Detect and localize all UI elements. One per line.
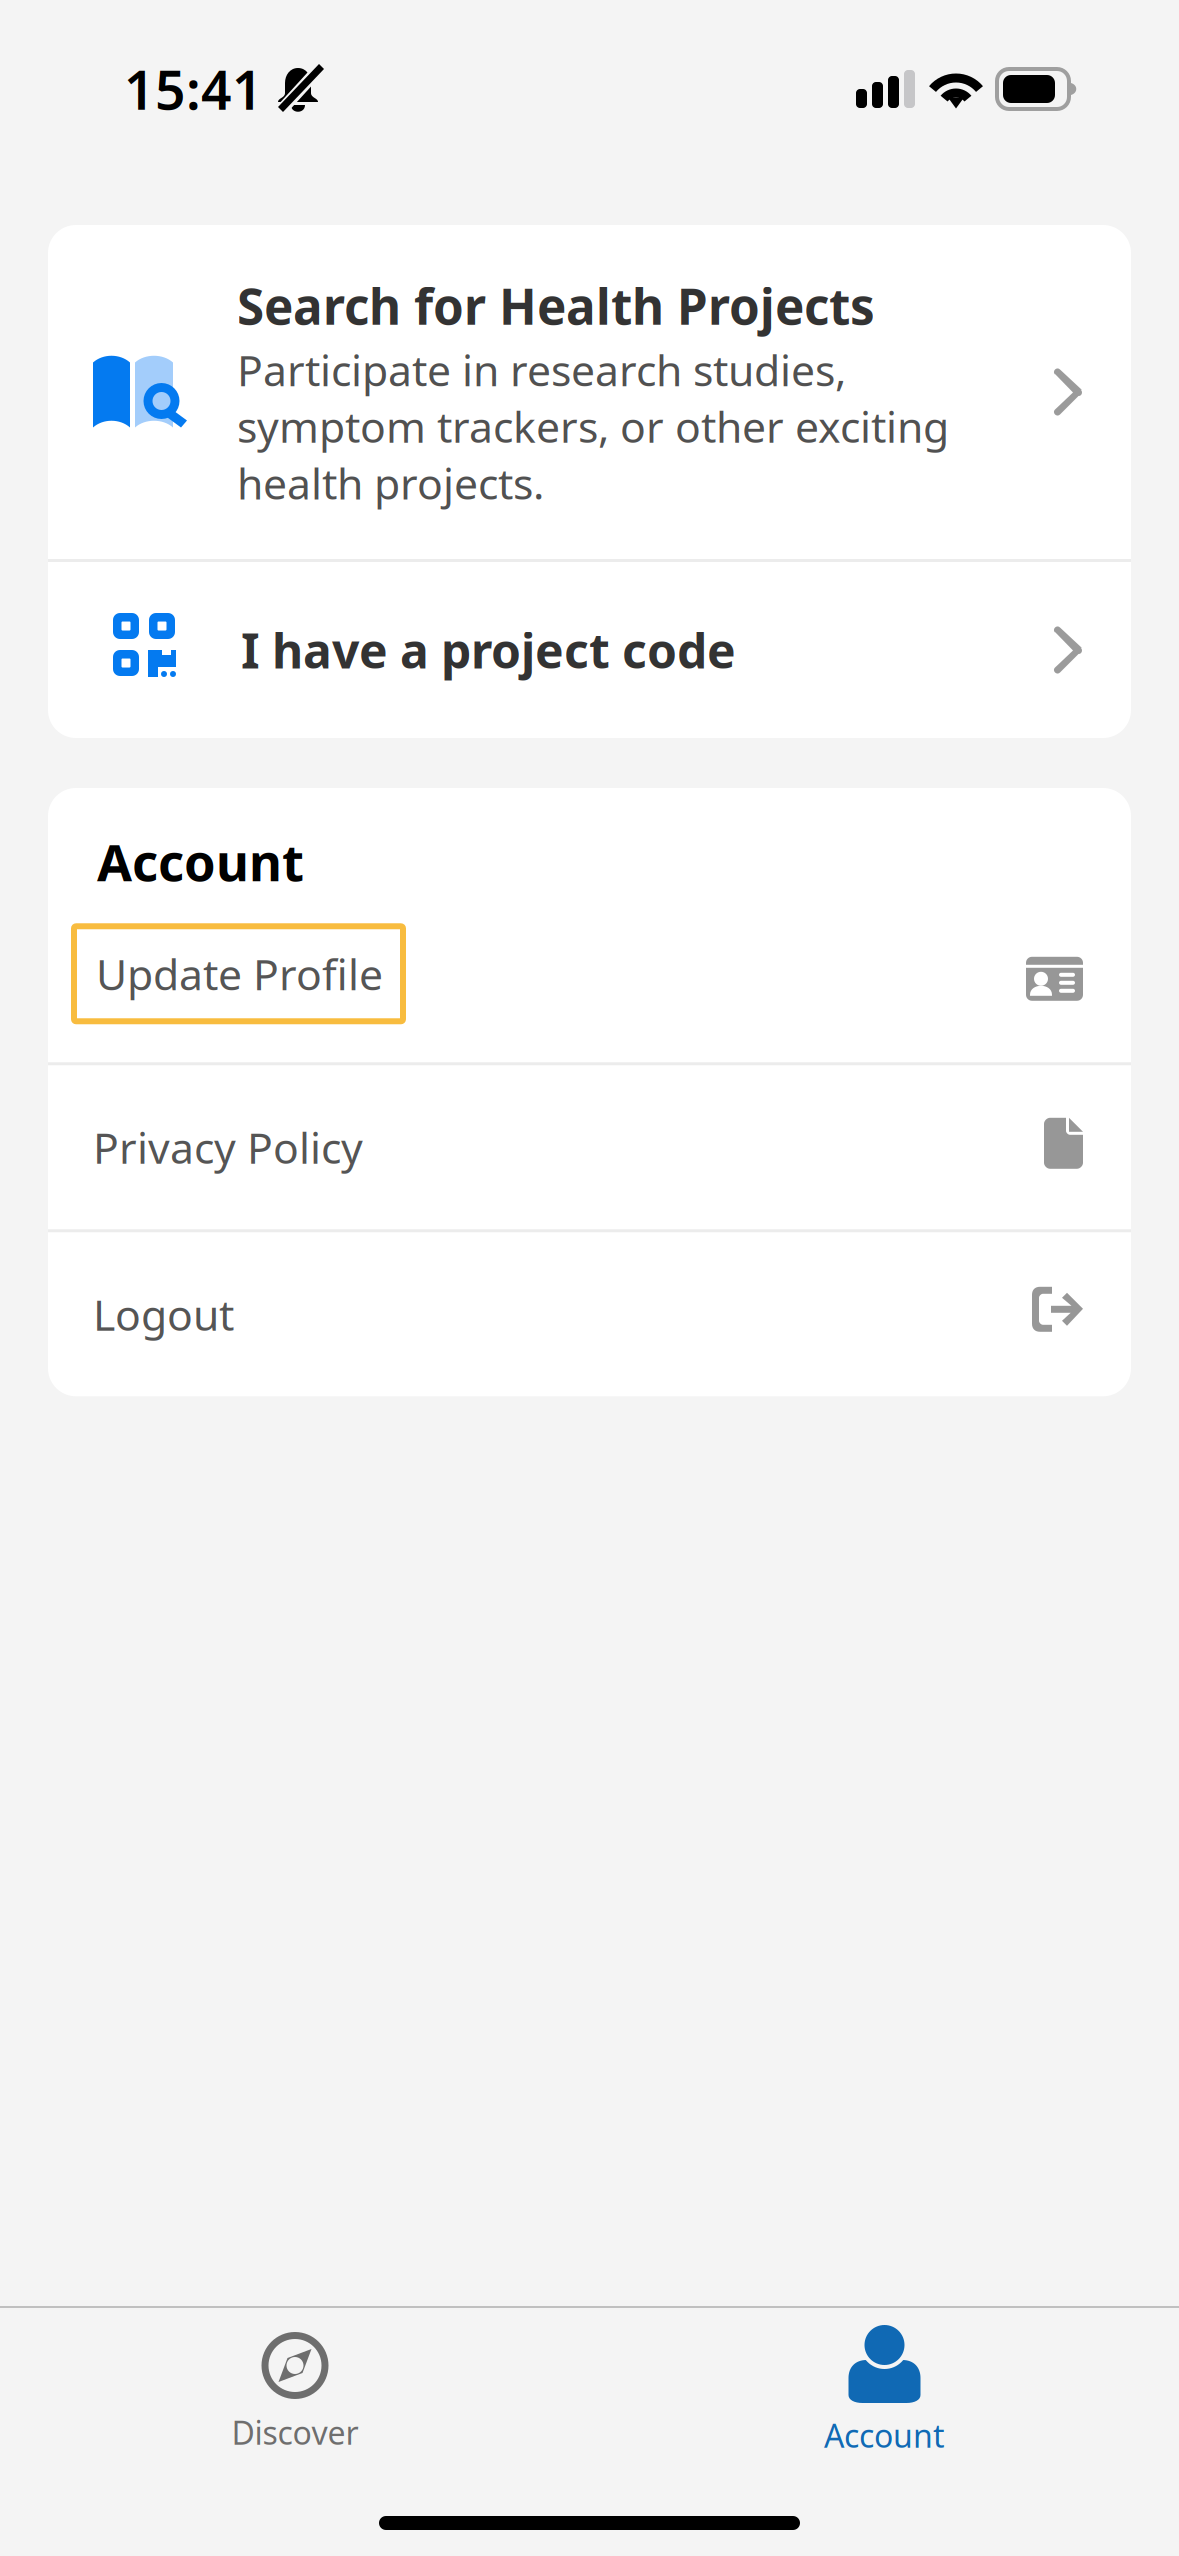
button[interactable]: Update Profile bbox=[48, 895, 1131, 1062]
staticText: Logout bbox=[93, 1286, 234, 1343]
staticText: Update Profile bbox=[96, 945, 383, 1002]
button[interactable]: Privacy Policy bbox=[48, 1065, 1131, 1229]
button[interactable]: Search for Health Projects bbox=[48, 225, 1131, 559]
staticText: Discover bbox=[231, 2411, 358, 2453]
staticText: Search for Health Projects bbox=[237, 273, 875, 338]
button[interactable]: Discover bbox=[0, 2308, 590, 2487]
staticText: Privacy Policy bbox=[93, 1119, 363, 1176]
staticText: Account bbox=[824, 2414, 945, 2456]
staticText: Participate in research studies, symptom… bbox=[237, 341, 949, 511]
staticText: 15:41 bbox=[124, 54, 263, 124]
staticText: I have a project code bbox=[241, 618, 736, 682]
button[interactable]: I have a project code bbox=[48, 562, 1131, 738]
button[interactable]: Logout bbox=[48, 1232, 1131, 1396]
staticText: Account bbox=[97, 828, 304, 895]
button[interactable]: Account bbox=[590, 2308, 1179, 2487]
